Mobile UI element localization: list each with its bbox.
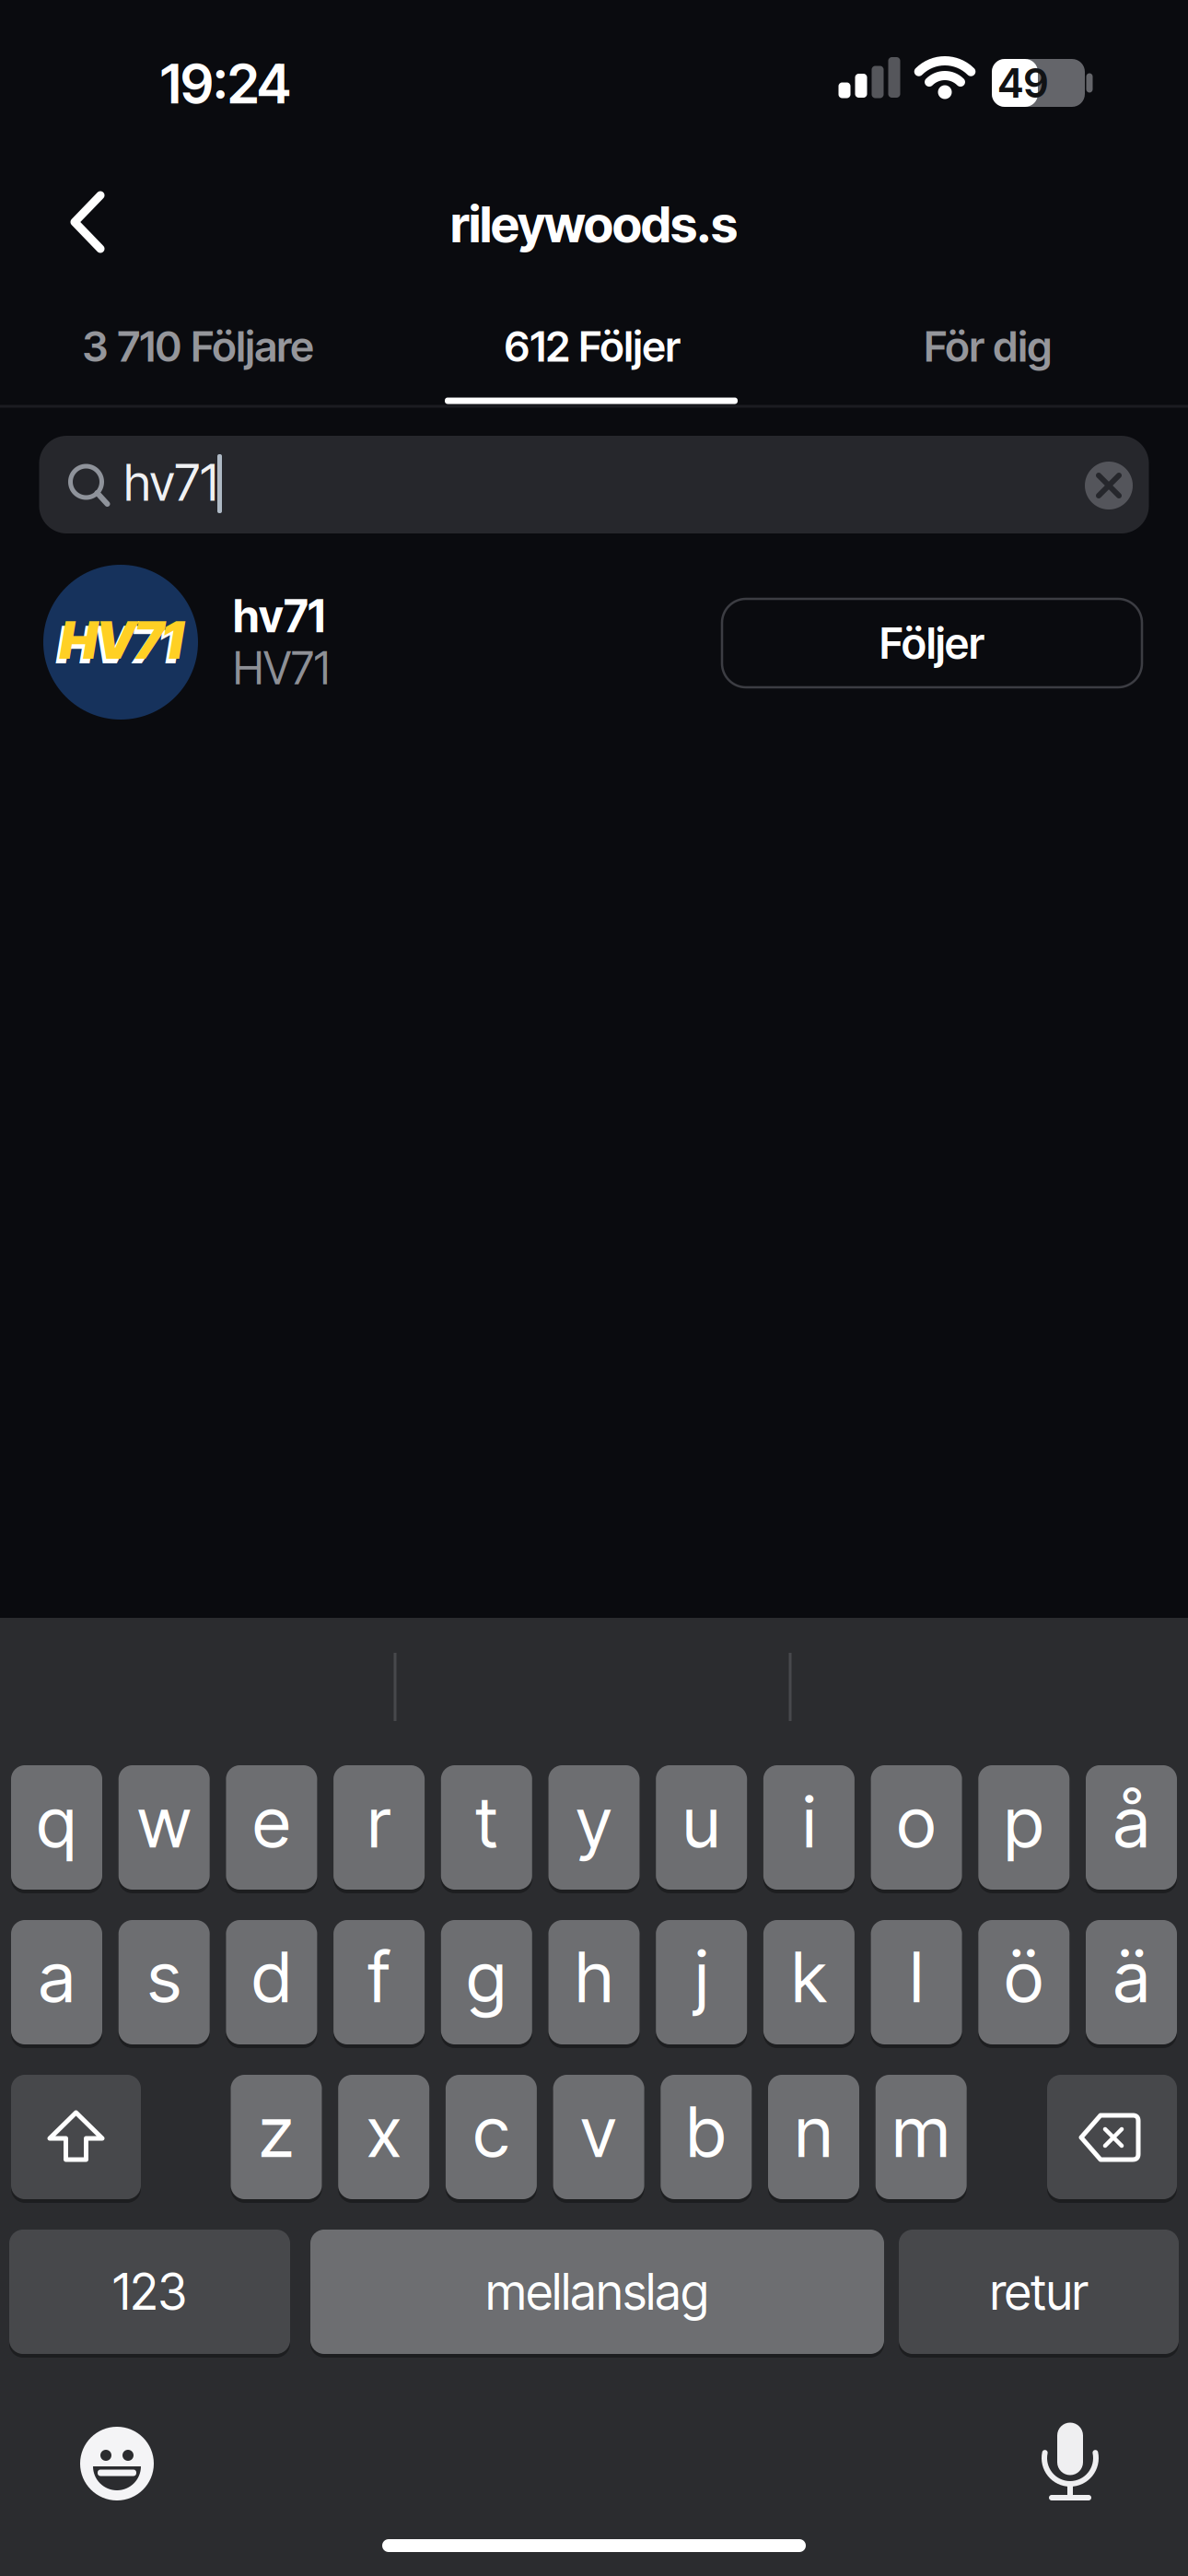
staticText: e — [253, 1781, 290, 1863]
staticText: i — [802, 1781, 815, 1863]
staticText: HV71 — [60, 609, 183, 672]
staticText: l — [910, 1935, 923, 2018]
staticText: r — [368, 1781, 391, 1863]
button[interactable]: i — [763, 1765, 855, 1890]
button[interactable]: d — [226, 1920, 317, 2044]
staticText: f — [368, 1935, 390, 2018]
button[interactable]: r — [333, 1765, 425, 1890]
button[interactable]: v — [553, 2075, 644, 2199]
staticText: b — [686, 2090, 726, 2173]
staticText: ö — [1005, 1935, 1043, 2018]
button[interactable]: e — [226, 1765, 317, 1890]
staticText: retur — [990, 2263, 1088, 2321]
staticText: j — [695, 1935, 708, 2018]
button[interactable]: 612 Följer — [394, 296, 790, 397]
button[interactable]: HV71 — [43, 561, 706, 723]
staticText: q — [37, 1781, 76, 1863]
staticText: y — [576, 1781, 612, 1863]
staticText: s — [148, 1935, 181, 2018]
button[interactable]: Shift — [11, 2075, 141, 2199]
button[interactable]: ä — [1086, 1920, 1177, 2044]
button[interactable]: Back — [46, 181, 129, 263]
staticText: 123 — [113, 2263, 186, 2321]
button[interactable]: m — [876, 2075, 967, 2199]
staticText: HV71 — [233, 642, 330, 694]
button[interactable]: Clear search — [1085, 462, 1133, 509]
staticText: v — [581, 2090, 617, 2173]
button[interactable]: Emoji — [76, 2422, 158, 2505]
staticText: w — [137, 1781, 191, 1863]
button[interactable]: k — [763, 1920, 855, 2044]
button[interactable]: 3 710 Följare — [0, 296, 396, 397]
staticText: HV71 — [56, 614, 180, 676]
button[interactable]: c — [446, 2075, 537, 2199]
button[interactable]: mellanslag — [310, 2230, 884, 2354]
staticText: d — [252, 1935, 291, 2018]
staticText: Följer — [879, 618, 984, 669]
button[interactable]: u — [656, 1765, 747, 1890]
button[interactable]: ö — [978, 1920, 1069, 2044]
staticText: p — [1004, 1781, 1044, 1863]
button[interactable]: h — [548, 1920, 640, 2044]
button[interactable]: n — [768, 2075, 859, 2199]
staticText: g — [467, 1935, 506, 2018]
staticText: z — [259, 2090, 294, 2173]
staticText: För dig — [924, 322, 1052, 371]
staticText: 19:24 — [160, 52, 291, 116]
staticText: x — [367, 2090, 401, 2173]
staticText: o — [897, 1781, 936, 1863]
button[interactable]: z — [231, 2075, 322, 2199]
staticText: 612 Följer — [504, 322, 680, 371]
staticText: 3 710 Följare — [82, 322, 314, 371]
button[interactable]: f — [333, 1920, 425, 2044]
staticText: u — [683, 1781, 720, 1863]
staticText: m — [892, 2090, 950, 2173]
button[interactable]: Följer — [722, 599, 1142, 687]
button[interactable]: retur — [899, 2230, 1179, 2354]
button[interactable]: hv71 — [39, 436, 1149, 533]
staticText: t — [475, 1781, 498, 1863]
button[interactable]: p — [978, 1765, 1069, 1890]
button[interactable]: g — [441, 1920, 532, 2044]
staticText: c — [473, 2090, 509, 2173]
button[interactable]: 123 — [9, 2230, 290, 2354]
staticText: rileywoods.s — [450, 194, 738, 254]
button[interactable]: a — [11, 1920, 102, 2044]
button[interactable]: Dictation — [1029, 2407, 1112, 2509]
staticText: 49 — [998, 59, 1048, 107]
staticText: ä — [1113, 1935, 1149, 2018]
button[interactable]: l — [871, 1920, 962, 2044]
staticText: å — [1113, 1781, 1149, 1863]
button[interactable]: b — [661, 2075, 752, 2199]
button[interactable]: Delete — [1047, 2075, 1177, 2199]
staticText: hv71 — [124, 454, 218, 512]
button[interactable]: å — [1086, 1765, 1177, 1890]
staticText: mellanslag — [486, 2263, 709, 2321]
staticText: hv71 — [233, 590, 325, 642]
staticText: k — [791, 1935, 826, 2018]
staticText: n — [795, 2090, 833, 2173]
button[interactable]: s — [119, 1920, 210, 2044]
button[interactable]: o — [871, 1765, 962, 1890]
button[interactable]: y — [548, 1765, 640, 1890]
button[interactable]: x — [338, 2075, 429, 2199]
button[interactable]: j — [656, 1920, 747, 2044]
button[interactable]: q — [11, 1765, 102, 1890]
button[interactable]: w — [119, 1765, 210, 1890]
staticText: a — [39, 1935, 75, 2018]
button[interactable]: För dig — [790, 296, 1186, 397]
staticText: h — [575, 1935, 613, 2018]
button[interactable]: t — [441, 1765, 532, 1890]
